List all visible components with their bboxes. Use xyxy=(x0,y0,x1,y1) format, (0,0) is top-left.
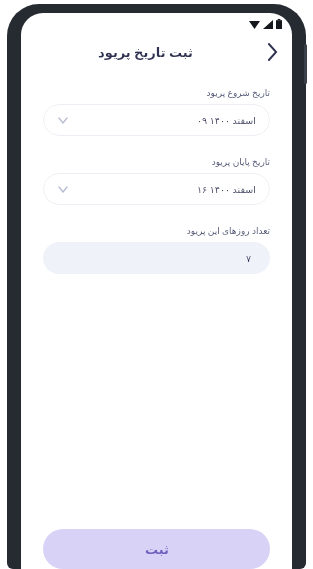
button[interactable]: Back xyxy=(257,37,287,67)
staticText: تاریخ پایان پریود xyxy=(211,155,270,167)
button[interactable]: ۷ xyxy=(43,242,270,274)
staticText: ثبت xyxy=(145,542,169,557)
button[interactable]: ۰۹ اسفند ۱۴۰۰ xyxy=(43,104,270,136)
staticText: تاریخ شروع پریود xyxy=(206,86,270,98)
staticText: تعداد روزهای این پریود xyxy=(186,224,270,236)
staticText: ۰۹ اسفند ۱۴۰۰ xyxy=(197,114,256,127)
staticText: ۷ xyxy=(246,253,252,264)
button[interactable]: ۱۶ اسفند ۱۴۰۰ xyxy=(43,173,270,205)
staticText: ثبت تاریخ پریود xyxy=(98,43,193,61)
staticText: ۱۶ اسفند ۱۴۰۰ xyxy=(197,183,256,196)
button[interactable]: ثبت xyxy=(43,529,270,569)
